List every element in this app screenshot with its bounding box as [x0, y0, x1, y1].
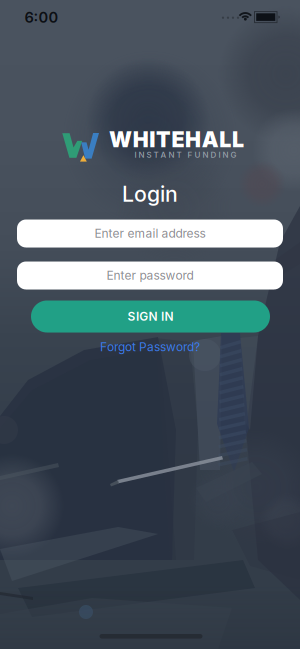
- button[interactable]: Enter password: [17, 261, 283, 289]
- staticText: Login: [122, 181, 178, 207]
- staticText: SIGN IN: [128, 309, 173, 324]
- staticText: Enter password: [106, 268, 193, 283]
- staticText: Enter email address: [94, 226, 205, 241]
- button[interactable]: Enter email address: [17, 219, 283, 247]
- button[interactable]: SIGN IN: [31, 300, 270, 332]
- staticText: 6:00: [24, 9, 58, 26]
- staticText: Forgot Password?: [100, 340, 200, 354]
- staticText: WHITEHALL: [109, 127, 244, 152]
- button[interactable]: Forgot Password?: [100, 340, 200, 354]
- staticText: I N S T A N T F U N D I N G: [134, 150, 236, 159]
